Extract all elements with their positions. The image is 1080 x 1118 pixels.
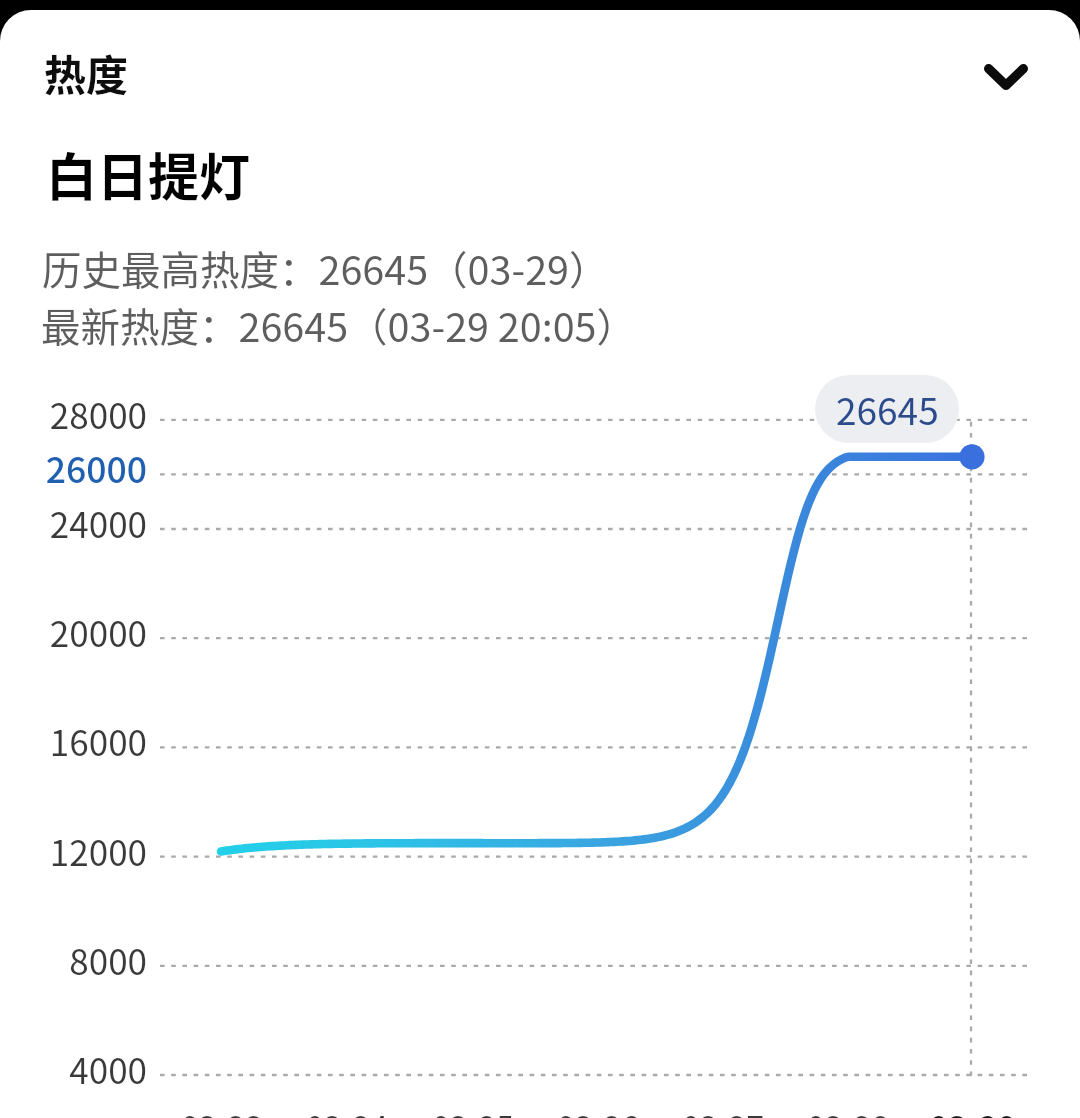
staticText: 03-26 — [518, 1103, 678, 1118]
staticText: 26000 — [0, 442, 147, 493]
staticText: 03-29 — [893, 1103, 1053, 1118]
staticText: 16000 — [0, 715, 147, 766]
staticText: 26645 — [836, 382, 939, 436]
staticText: 4000 — [0, 1043, 147, 1094]
staticText: 最新热度：26645（03-29 20:05） — [41, 296, 637, 353]
staticText: 03-28 — [768, 1103, 928, 1118]
staticText: 热度 — [44, 42, 129, 103]
staticText: 03-24 — [267, 1103, 427, 1118]
staticText: 8000 — [0, 934, 147, 985]
staticText: 28000 — [0, 388, 147, 439]
staticText: 20000 — [0, 606, 147, 657]
button[interactable]: Collapse — [958, 35, 1054, 119]
staticText: 历史最高热度：26645（03-29） — [42, 239, 609, 296]
staticText: 03-27 — [643, 1103, 803, 1118]
staticText: 03-25 — [393, 1103, 553, 1118]
staticText: 12000 — [0, 825, 147, 876]
staticText: 白日提灯 — [46, 137, 251, 211]
staticText: 03-23 — [142, 1103, 302, 1118]
button[interactable]: 26645 — [815, 375, 959, 443]
button[interactable]: 热度 — [0, 10, 1080, 118]
staticText: 24000 — [0, 497, 147, 548]
